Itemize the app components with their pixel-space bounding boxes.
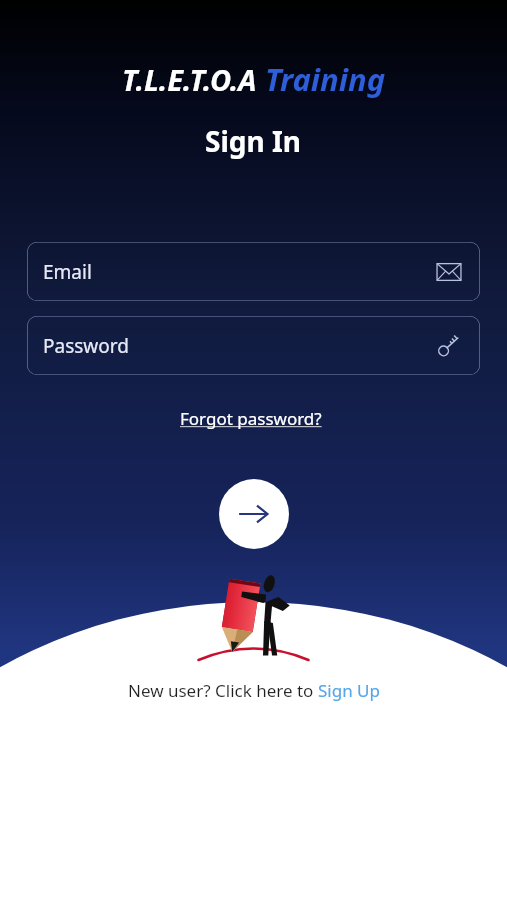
button[interactable]: New user? Click here to <box>118 675 390 706</box>
button[interactable]: Forgot password? <box>174 403 333 434</box>
button[interactable]: Email <box>27 242 480 301</box>
staticText: Password <box>43 333 129 359</box>
other: TLETOA logo <box>191 567 316 667</box>
button[interactable]: Password <box>27 316 480 375</box>
staticText: Training <box>265 58 386 100</box>
staticText: Forgot password? <box>180 407 327 430</box>
staticText: Sign Up <box>318 679 380 702</box>
staticText: Sign In <box>205 122 302 160</box>
button[interactable]: Sign in <box>219 479 289 549</box>
staticText: T.L.E.T.O.A <box>122 60 257 99</box>
staticText: New user? Click here to <box>128 679 318 702</box>
staticText: Email <box>43 259 92 285</box>
